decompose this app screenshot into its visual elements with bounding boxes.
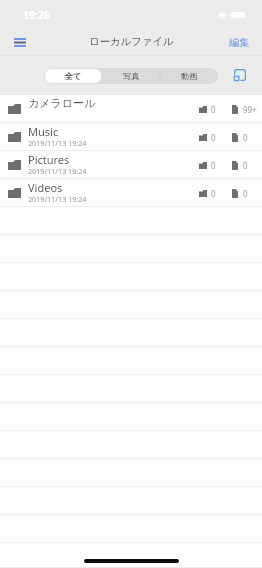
staticText: 2019/11/13 19:24 (28, 194, 87, 204)
button[interactable]: Music (0, 123, 262, 151)
staticText: 編集 (229, 36, 249, 49)
staticText: Videos (28, 180, 63, 195)
staticText: 99+ (243, 104, 257, 115)
staticText: 19:26 (23, 8, 50, 22)
button[interactable]: Menu (8, 30, 32, 54)
button[interactable]: 編集 (229, 36, 249, 49)
staticText: 0 (243, 160, 248, 171)
staticText: 0 (243, 188, 248, 199)
staticText: 2019/11/13 19:24 (28, 138, 87, 148)
staticText: 写真 (123, 71, 139, 81)
button[interactable]: Change layout (232, 67, 248, 83)
staticText: 0 (211, 132, 216, 143)
staticText: カメラロール (28, 96, 96, 110)
button[interactable]: 全て (45, 69, 101, 83)
button[interactable]: Pictures (0, 151, 262, 179)
staticText: 0 (211, 104, 216, 115)
button[interactable]: 動画 (161, 69, 217, 83)
staticText: Pictures (28, 152, 70, 167)
button[interactable]: カメラロール (0, 95, 262, 123)
staticText: 動画 (181, 71, 197, 81)
button[interactable]: Videos (0, 179, 262, 207)
staticText: ローカルファイル (89, 35, 174, 48)
staticText: Music (28, 124, 59, 139)
button[interactable]: 写真 (103, 69, 159, 83)
staticText: 全て (65, 71, 82, 81)
staticText: 0 (243, 132, 248, 143)
staticText: 2019/11/13 19:24 (28, 166, 87, 176)
staticText: 0 (211, 160, 216, 171)
staticText: 0 (211, 188, 216, 199)
